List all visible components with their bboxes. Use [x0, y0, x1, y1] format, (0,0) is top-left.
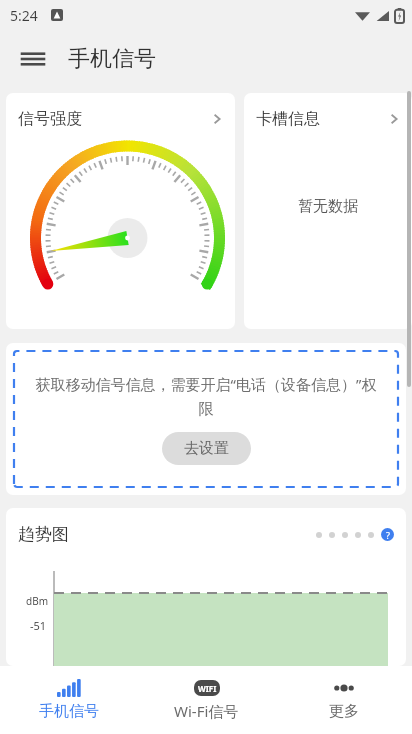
button[interactable]: 更多	[275, 666, 412, 734]
staticText: 更多	[329, 702, 359, 721]
staticText: 获取移动信号信息，需要开启“电话（设备信息）”权限	[32, 374, 380, 418]
staticText: 趋势图	[18, 524, 69, 545]
staticText: 去设置	[184, 439, 229, 458]
staticText: WIFI	[198, 683, 217, 694]
staticText: 手机信号	[68, 45, 156, 73]
button[interactable]: Help	[381, 528, 394, 541]
staticText: 5:24	[10, 6, 38, 25]
staticText: 信号强度	[18, 109, 82, 129]
button[interactable]: 手机信号	[0, 666, 138, 734]
button[interactable]: WIFI	[138, 666, 275, 734]
button[interactable]: 卡槽信息	[244, 93, 412, 329]
staticText: -51	[30, 618, 47, 633]
staticText: dBm	[26, 594, 48, 608]
button[interactable]: Menu	[12, 38, 54, 80]
staticText: Wi-Fi信号	[174, 701, 239, 721]
staticText: 手机信号	[39, 702, 99, 721]
staticText: ?	[386, 529, 390, 541]
staticText: 卡槽信息	[256, 109, 320, 129]
button[interactable]: 去设置	[162, 432, 251, 465]
button[interactable]: 信号强度	[6, 93, 235, 329]
staticText: 暂无数据	[298, 197, 358, 216]
